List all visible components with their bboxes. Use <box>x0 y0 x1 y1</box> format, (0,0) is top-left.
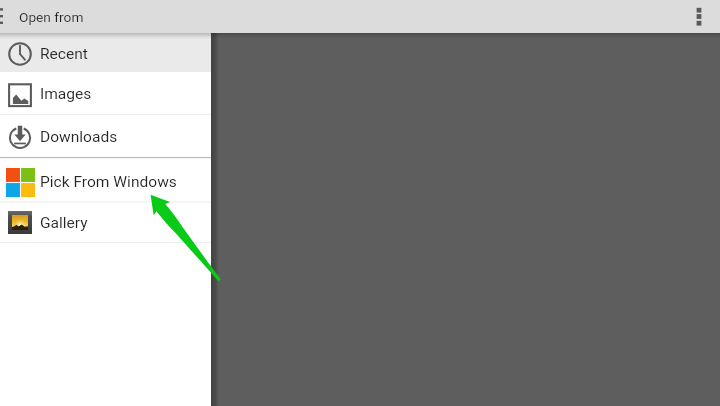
button[interactable]: Recent <box>0 33 211 72</box>
staticText: Pick From Windows <box>40 173 177 191</box>
staticText: Open from <box>19 9 84 25</box>
button[interactable]: Images <box>0 73 211 115</box>
button[interactable]: Pick From Windows <box>0 158 211 202</box>
button[interactable]: Navigation menu <box>0 0 3 33</box>
staticText: Recent <box>40 45 88 63</box>
staticText: Images <box>40 85 92 103</box>
button[interactable]: Downloads <box>0 115 211 158</box>
staticText: Downloads <box>40 128 118 146</box>
button[interactable]: More options <box>687 0 711 33</box>
staticText: Gallery <box>40 214 88 232</box>
button[interactable]: Gallery <box>0 202 211 243</box>
